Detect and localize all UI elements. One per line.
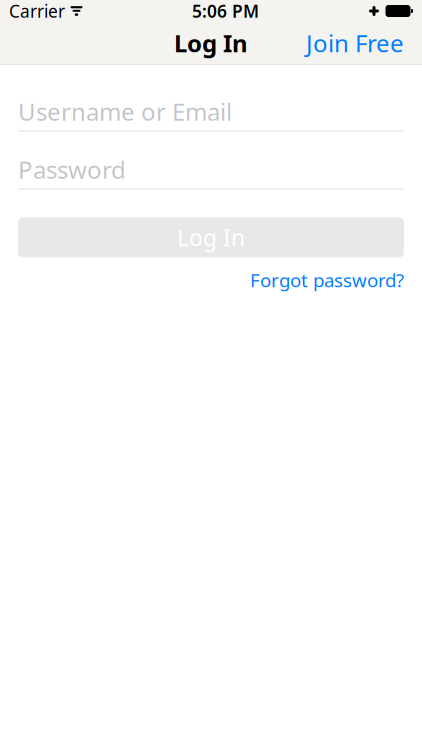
- staticText: Carrier: [9, 0, 65, 22]
- staticText: 5:06 PM: [192, 0, 259, 22]
- staticText: Log In: [177, 222, 245, 252]
- button[interactable]: Forgot password?: [250, 264, 404, 295]
- staticText: Log In: [174, 27, 248, 59]
- button[interactable]: Log In: [18, 217, 404, 257]
- staticText: Username or Email: [18, 96, 232, 127]
- staticText: Forgot password?: [250, 267, 404, 292]
- button[interactable]: Join Free: [297, 20, 413, 66]
- staticText: Password: [18, 154, 126, 185]
- staticText: Join Free: [306, 27, 404, 59]
